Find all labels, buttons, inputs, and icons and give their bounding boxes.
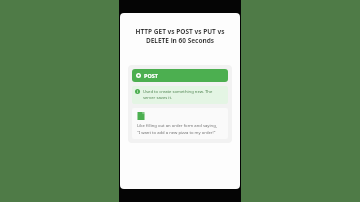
staticText: POST: [144, 72, 158, 79]
button[interactable]: Document: [132, 108, 228, 139]
button[interactable]: Used to create something new. The server…: [132, 86, 228, 104]
staticText: HTTP GET vs POST vs PUT vs DELETE in 60 …: [126, 27, 234, 45]
staticText: Like filling out an order form and sayin…: [137, 123, 217, 135]
button[interactable]: POST method: [132, 69, 228, 82]
staticText: Used to create something new. The server…: [143, 89, 225, 101]
other: POST method: [136, 73, 141, 78]
other: Document: [137, 112, 145, 120]
button[interactable]: POST method: [128, 65, 232, 143]
